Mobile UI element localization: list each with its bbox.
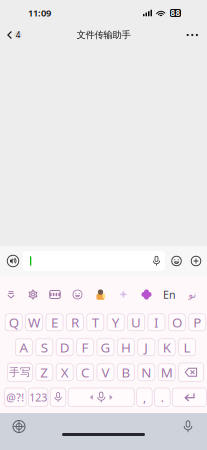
button[interactable]: N: [138, 364, 155, 381]
button[interactable]: نو: [181, 285, 203, 304]
button[interactable]: Voice input: [50, 388, 66, 406]
button[interactable]: S: [36, 339, 53, 356]
staticText: 文件传输助手: [76, 29, 130, 41]
button[interactable]: A: [15, 339, 32, 356]
staticText: H: [121, 338, 131, 356]
button[interactable]: En: [158, 285, 181, 304]
staticText: Y: [112, 313, 120, 331]
button[interactable]: R: [66, 314, 83, 331]
button[interactable]: B: [117, 364, 134, 381]
staticText: V: [101, 363, 109, 381]
staticText: Z: [40, 363, 48, 381]
button[interactable]: Keyboard layout: [44, 285, 66, 304]
staticText: M: [161, 363, 173, 381]
staticText: Q: [9, 313, 19, 331]
button[interactable]: Emoji: [66, 285, 89, 304]
button[interactable]: Voice input: [3, 249, 23, 273]
staticText: W: [28, 313, 40, 331]
button[interactable]: G: [97, 339, 114, 356]
button[interactable]: F: [77, 339, 94, 356]
button[interactable]: H: [117, 339, 134, 356]
button[interactable]: V: [97, 364, 114, 381]
button[interactable]: D: [56, 339, 73, 356]
button[interactable]: U: [128, 314, 145, 331]
button[interactable]: L: [179, 339, 196, 356]
button[interactable]: @?!: [4, 388, 26, 406]
button[interactable]: E: [46, 314, 63, 331]
button[interactable]: T: [87, 314, 104, 331]
button[interactable]: C: [77, 364, 94, 381]
button[interactable]: 手写: [7, 363, 32, 381]
staticText: X: [61, 363, 69, 381]
button[interactable]: O: [168, 314, 185, 331]
button[interactable]: Return: [172, 388, 206, 406]
staticText: En: [163, 287, 176, 302]
staticText: 11:09: [28, 7, 51, 19]
button[interactable]: Effects: [112, 285, 135, 304]
button[interactable]: Emoji: [165, 249, 188, 273]
button[interactable]: W: [26, 314, 43, 331]
staticText: @?!: [6, 390, 24, 404]
staticText: D: [60, 338, 70, 356]
button[interactable]: ,: [137, 388, 152, 406]
staticText: R: [71, 313, 79, 331]
staticText: ,: [143, 389, 146, 405]
button[interactable]: K: [158, 339, 175, 356]
button[interactable]: I: [148, 314, 165, 331]
button[interactable]: 123: [28, 388, 48, 406]
button[interactable]: Switch language: [5, 414, 33, 438]
staticText: J: [144, 338, 148, 356]
staticText: K: [163, 338, 171, 356]
staticText: G: [100, 338, 110, 356]
staticText: 手写: [9, 366, 31, 379]
staticText: F: [82, 338, 89, 356]
staticText: 88: [170, 8, 180, 18]
button[interactable]: Back: [0, 26, 30, 44]
staticText: A: [19, 338, 28, 356]
staticText: نو: [188, 289, 196, 300]
button[interactable]: Z: [36, 364, 53, 381]
button[interactable]: Y: [107, 314, 124, 331]
staticText: B: [121, 363, 130, 381]
button[interactable]: Stickers: [89, 285, 112, 304]
staticText: L: [184, 338, 191, 356]
button[interactable]: Dictation: [174, 414, 202, 438]
staticText: E: [51, 313, 58, 331]
staticText: O: [172, 313, 182, 331]
staticText: I: [154, 313, 159, 331]
staticText: T: [92, 313, 99, 331]
button[interactable]: J: [138, 339, 155, 356]
button[interactable]: M: [158, 364, 175, 381]
button[interactable]: Delete: [179, 363, 204, 381]
button[interactable]: Theme: [135, 285, 158, 304]
staticText: N: [141, 363, 151, 381]
staticText: 4: [16, 30, 21, 40]
button[interactable]: .: [155, 388, 170, 406]
button[interactable]: Voice message: [148, 251, 165, 271]
button[interactable]: P: [189, 314, 206, 331]
button[interactable]: X: [56, 364, 73, 381]
button[interactable]: Space: [68, 388, 134, 406]
button[interactable]: Q: [5, 314, 22, 331]
button[interactable]: Add: [188, 249, 204, 273]
staticText: P: [193, 313, 201, 331]
staticText: S: [41, 338, 48, 356]
button[interactable]: Hide keyboard: [0, 285, 22, 304]
staticText: 123: [29, 390, 47, 404]
button[interactable]: Keyboard settings: [22, 285, 44, 304]
button[interactable]: More: [177, 26, 207, 44]
staticText: .: [161, 389, 164, 405]
staticText: C: [81, 363, 89, 381]
staticText: U: [131, 313, 141, 331]
